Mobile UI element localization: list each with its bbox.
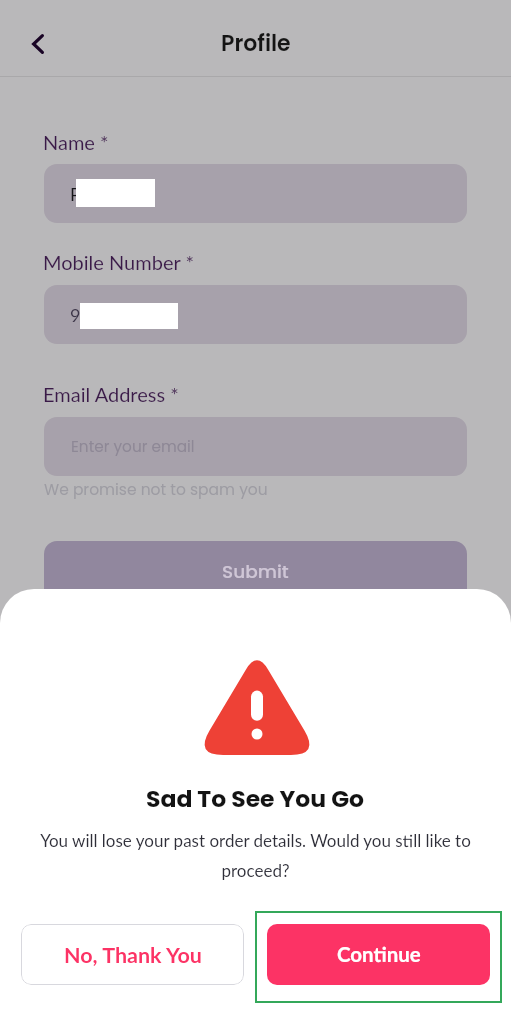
button[interactable]: Enter your email [44,417,467,476]
staticText: Sad To See You Go [146,782,365,815]
staticText: Continue [337,942,421,967]
staticText: Name * [43,130,109,154]
staticText: Email Address * [43,382,179,406]
button[interactable]: Continue [267,924,490,985]
button[interactable]: 9 [44,285,467,344]
button[interactable]: P [44,164,467,223]
staticText: Enter your email [71,436,195,457]
staticText: Submit [222,559,289,585]
button[interactable]: Submit [44,541,467,603]
button[interactable]: Back [13,19,62,68]
staticText: 9 [70,304,81,326]
staticText: No, Thank You [64,942,202,968]
staticText: Mobile Number * [43,250,194,274]
staticText: P [70,183,81,205]
button[interactable]: No, Thank You [21,924,244,985]
staticText: Profile [221,28,291,59]
staticText: We promise not to spam you [44,479,268,501]
staticText: You will lose your past order details. W… [36,830,475,881]
